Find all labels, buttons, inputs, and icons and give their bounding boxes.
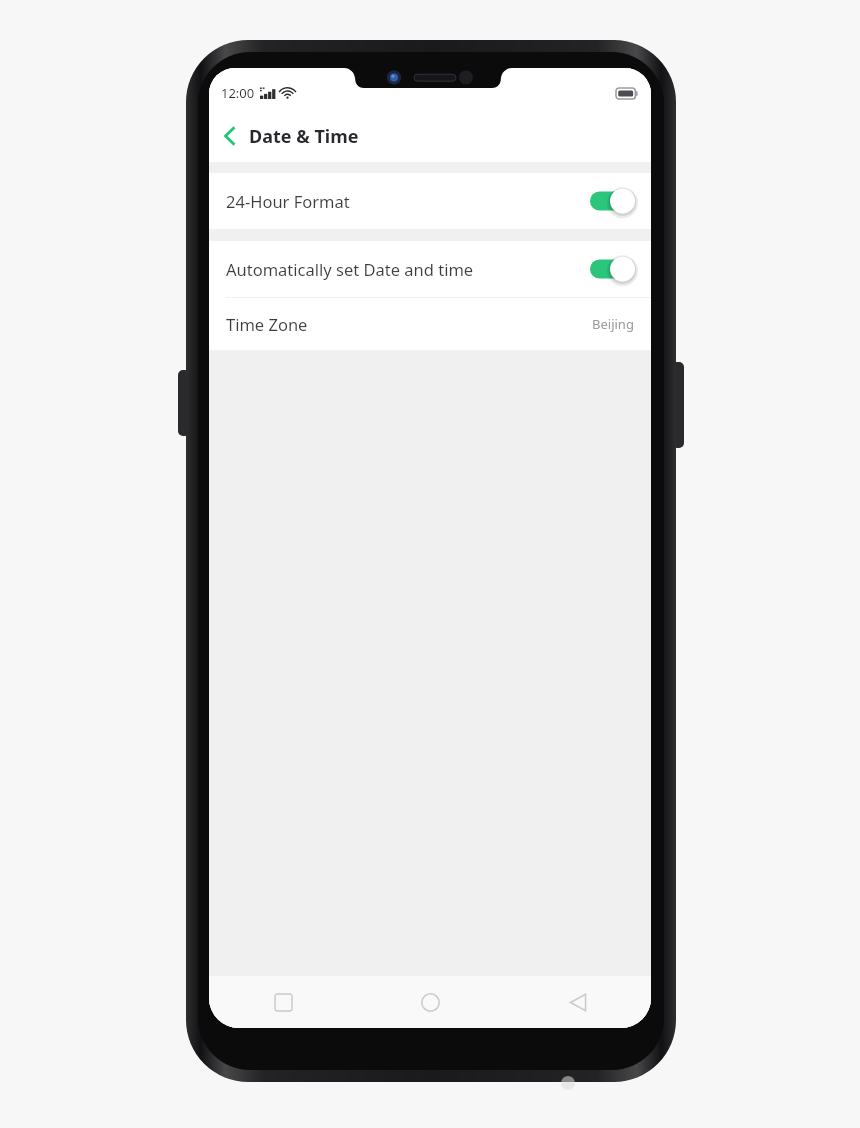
- button[interactable]: Automatically set Date and time: [209, 241, 651, 297]
- staticText: 24-Hour Format: [226, 190, 590, 212]
- button[interactable]: Home: [357, 976, 504, 1028]
- button[interactable]: Back: [209, 115, 251, 157]
- staticText: 12:00: [221, 84, 255, 102]
- button[interactable]: 24-Hour Format: [209, 173, 651, 229]
- staticText: Beijing: [592, 315, 634, 333]
- staticText: Automatically set Date and time: [226, 258, 590, 280]
- button[interactable]: Time Zone: [209, 298, 651, 350]
- button[interactable]: Recent apps: [209, 976, 357, 1028]
- staticText: Time Zone: [226, 313, 592, 335]
- staticText: Date & Time: [249, 124, 359, 149]
- button[interactable]: Back: [504, 976, 651, 1028]
